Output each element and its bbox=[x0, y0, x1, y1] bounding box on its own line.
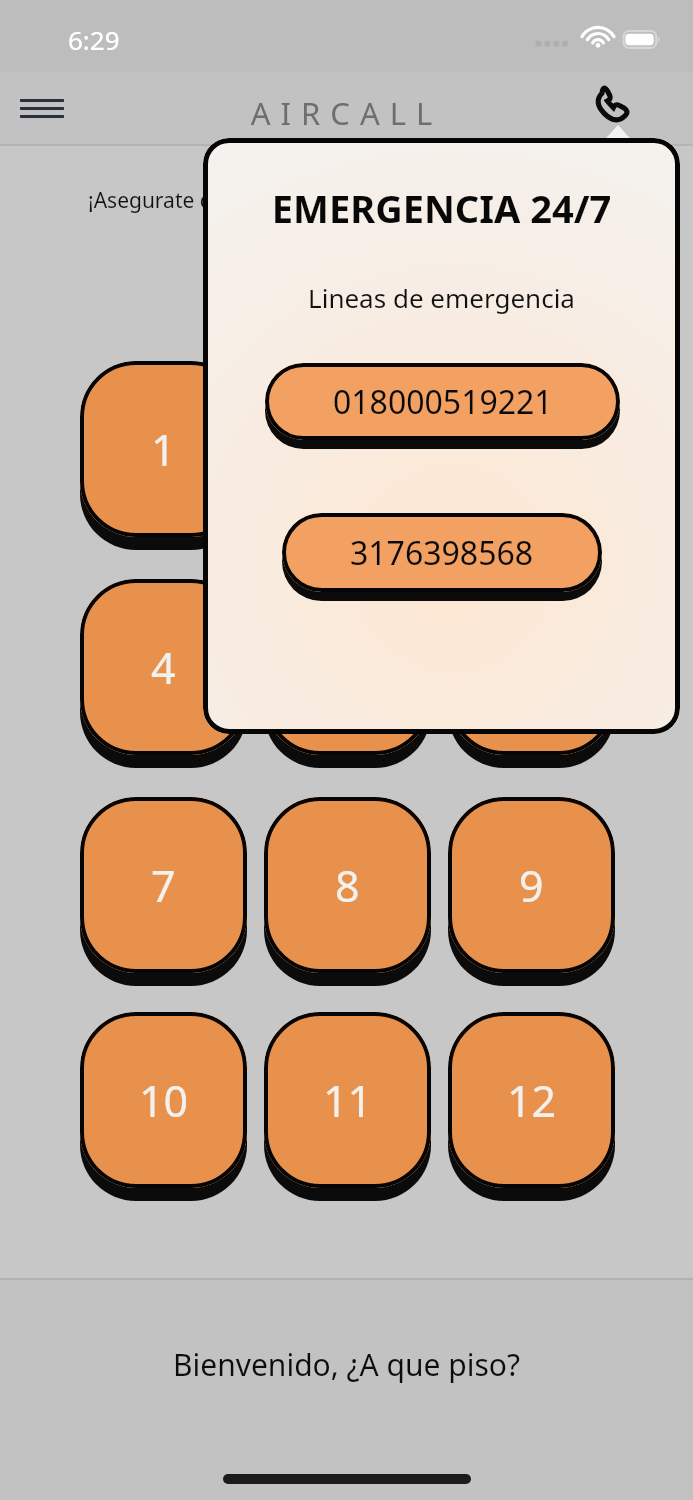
button[interactable]: 9 bbox=[448, 797, 615, 987]
button[interactable]: 7 bbox=[80, 797, 247, 987]
staticText: 11 bbox=[323, 1071, 373, 1130]
staticText: 3176398568 bbox=[350, 531, 534, 575]
button[interactable]: 2 bbox=[264, 361, 431, 551]
staticText: EMERGENCIA 24/7 bbox=[203, 182, 680, 234]
staticText: Lineas de emergencia bbox=[203, 280, 680, 315]
staticText: 12 bbox=[507, 1071, 557, 1130]
button[interactable]: 10 bbox=[80, 1012, 247, 1202]
button[interactable]: Menu bbox=[14, 84, 70, 132]
staticText: Bienvenido, ¿A que piso? bbox=[0, 1344, 693, 1385]
button[interactable]: 4 bbox=[80, 579, 247, 769]
button[interactable]: Call bbox=[584, 80, 648, 140]
staticText: ¡Asegurate de tu piso! bbox=[88, 186, 303, 215]
button[interactable]: 5 bbox=[264, 579, 431, 769]
staticText: 8 bbox=[335, 856, 360, 915]
button[interactable]: 11 bbox=[264, 1012, 431, 1202]
staticText: 4 bbox=[151, 638, 176, 697]
button[interactable]: 018000519221 bbox=[265, 363, 620, 450]
button[interactable]: 3 bbox=[448, 361, 615, 551]
staticText: 10 bbox=[139, 1071, 189, 1130]
staticText: 6:29 bbox=[68, 22, 120, 57]
staticText: 1 bbox=[151, 420, 176, 479]
staticText: 7 bbox=[151, 856, 176, 915]
button[interactable]: 12 bbox=[448, 1012, 615, 1202]
staticText: AIRCALL bbox=[0, 92, 693, 134]
button[interactable]: 1 bbox=[80, 361, 247, 551]
button[interactable]: 8 bbox=[264, 797, 431, 987]
button[interactable]: 3176398568 bbox=[282, 513, 602, 602]
button[interactable]: 6 bbox=[448, 579, 615, 769]
staticText: 2 bbox=[335, 420, 360, 479]
staticText: 9 bbox=[519, 856, 544, 915]
staticText: 018000519221 bbox=[333, 380, 553, 424]
staticText: 3 bbox=[519, 420, 544, 479]
